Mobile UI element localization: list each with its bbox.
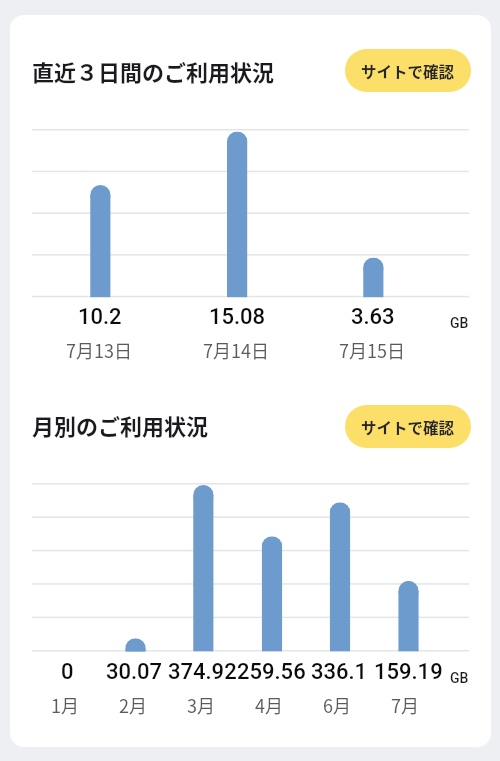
other: Usage bar chart	[32, 129, 469, 300]
staticText: 0	[61, 659, 74, 685]
staticText: 259.56	[237, 659, 306, 685]
staticText: サイトで確認	[361, 416, 455, 438]
other: Usage bar chart	[32, 483, 469, 654]
staticText: 7月13日	[66, 337, 132, 363]
staticText: 30.07	[106, 659, 163, 685]
staticText: 7月14日	[203, 337, 269, 363]
staticText: 1月	[51, 692, 79, 718]
staticText: 336.1	[311, 659, 368, 685]
staticText: GB	[450, 670, 469, 686]
staticText: 月別のご利用状況	[32, 409, 209, 441]
staticText: サイトで確認	[361, 60, 455, 82]
staticText: 3月	[187, 692, 215, 718]
staticText: 6月	[323, 692, 351, 718]
staticText: 3.63	[351, 304, 395, 330]
staticText: 15.08	[209, 304, 266, 330]
staticText: 10.2	[78, 304, 122, 330]
staticText: 直近３日間のご利用状況	[32, 55, 275, 87]
staticText: 7月15日	[339, 337, 405, 363]
button[interactable]: サイトで確認	[345, 49, 471, 92]
staticText: 374.92	[168, 659, 237, 685]
staticText: 2月	[119, 692, 147, 718]
staticText: 7月	[391, 692, 419, 718]
staticText: GB	[450, 315, 469, 331]
button[interactable]: サイトで確認	[345, 405, 471, 448]
staticText: 159.19	[374, 659, 443, 685]
staticText: 4月	[255, 692, 283, 718]
